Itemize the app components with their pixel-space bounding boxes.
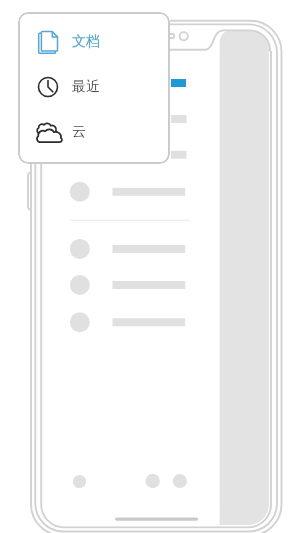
staticText: 最近 — [72, 78, 100, 96]
button[interactable]: 云 — [18, 109, 170, 154]
button[interactable]: 最近 — [18, 64, 170, 109]
button[interactable]: 文档 — [18, 19, 170, 64]
staticText: 云 — [72, 123, 86, 141]
staticText: 文档 — [72, 33, 100, 51]
